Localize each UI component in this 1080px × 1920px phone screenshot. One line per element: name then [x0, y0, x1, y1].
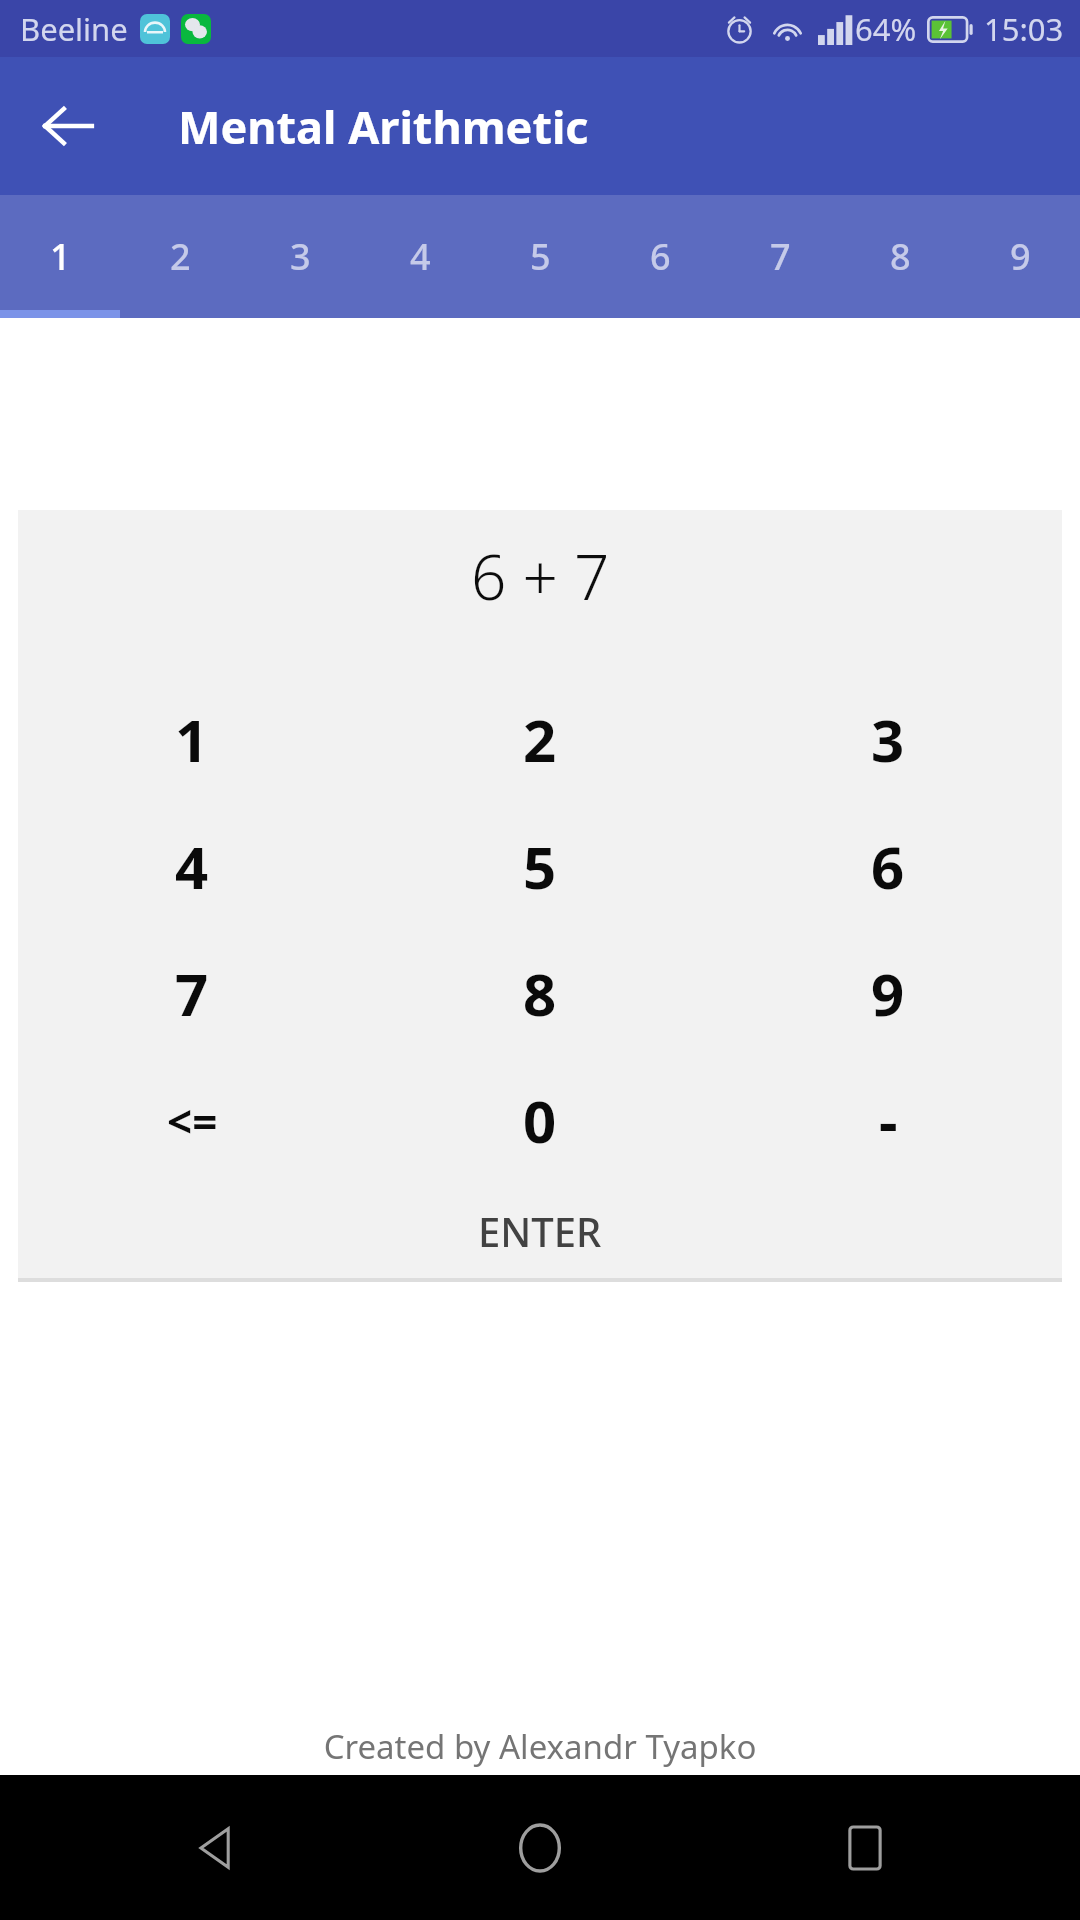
- staticText: 7: [770, 232, 791, 281]
- staticText: 6 + 7: [471, 534, 610, 618]
- staticText: Beeline: [20, 8, 128, 50]
- button[interactable]: 7: [18, 930, 366, 1057]
- button[interactable]: Back: [26, 84, 110, 168]
- staticText: 1: [175, 700, 209, 779]
- button[interactable]: 2: [366, 676, 714, 803]
- button[interactable]: 6: [600, 195, 720, 318]
- staticText: 1: [50, 232, 71, 281]
- staticText: 5: [523, 827, 557, 906]
- button[interactable]: Back: [170, 1803, 260, 1893]
- staticText: 5: [530, 232, 551, 281]
- button[interactable]: 8: [840, 195, 960, 318]
- staticText: ENTER: [478, 1204, 602, 1258]
- staticText: 64%: [855, 8, 917, 50]
- staticText: 0: [523, 1081, 557, 1160]
- staticText: 6: [650, 232, 671, 281]
- button[interactable]: 5: [366, 803, 714, 930]
- button[interactable]: 3: [240, 195, 360, 318]
- staticText: 4: [175, 827, 209, 906]
- button[interactable]: 1: [18, 676, 366, 803]
- staticText: Created by Alexandr Tyapko: [0, 1724, 1080, 1769]
- button[interactable]: -: [714, 1057, 1062, 1184]
- staticText: 7: [175, 954, 209, 1033]
- staticText: 3: [290, 232, 311, 281]
- button[interactable]: 4: [360, 195, 480, 318]
- button[interactable]: 9: [960, 195, 1080, 318]
- staticText: 2: [523, 700, 557, 779]
- button[interactable]: 7: [720, 195, 840, 318]
- button[interactable]: 3: [714, 676, 1062, 803]
- button[interactable]: 9: [714, 930, 1062, 1057]
- staticText: -: [879, 1081, 898, 1160]
- staticText: Mental Arithmetic: [178, 96, 589, 157]
- button[interactable]: Recent apps: [820, 1803, 910, 1893]
- button[interactable]: 1: [0, 195, 120, 318]
- staticText: 8: [523, 954, 557, 1033]
- button[interactable]: 2: [120, 195, 240, 318]
- staticText: 8: [890, 232, 911, 281]
- staticText: 9: [871, 954, 905, 1033]
- staticText: 3: [871, 700, 905, 779]
- staticText: 6: [871, 827, 905, 906]
- staticText: 15:03: [984, 8, 1064, 50]
- button[interactable]: 5: [480, 195, 600, 318]
- button[interactable]: 0: [366, 1057, 714, 1184]
- button[interactable]: <=: [18, 1057, 366, 1184]
- button[interactable]: ENTER: [18, 1184, 1062, 1278]
- button[interactable]: 8: [366, 930, 714, 1057]
- staticText: 4: [410, 232, 431, 281]
- staticText: 9: [1010, 232, 1031, 281]
- button[interactable]: Home: [495, 1803, 585, 1893]
- staticText: <=: [167, 1091, 218, 1151]
- staticText: 2: [170, 232, 191, 281]
- button[interactable]: 4: [18, 803, 366, 930]
- button[interactable]: 6: [714, 803, 1062, 930]
